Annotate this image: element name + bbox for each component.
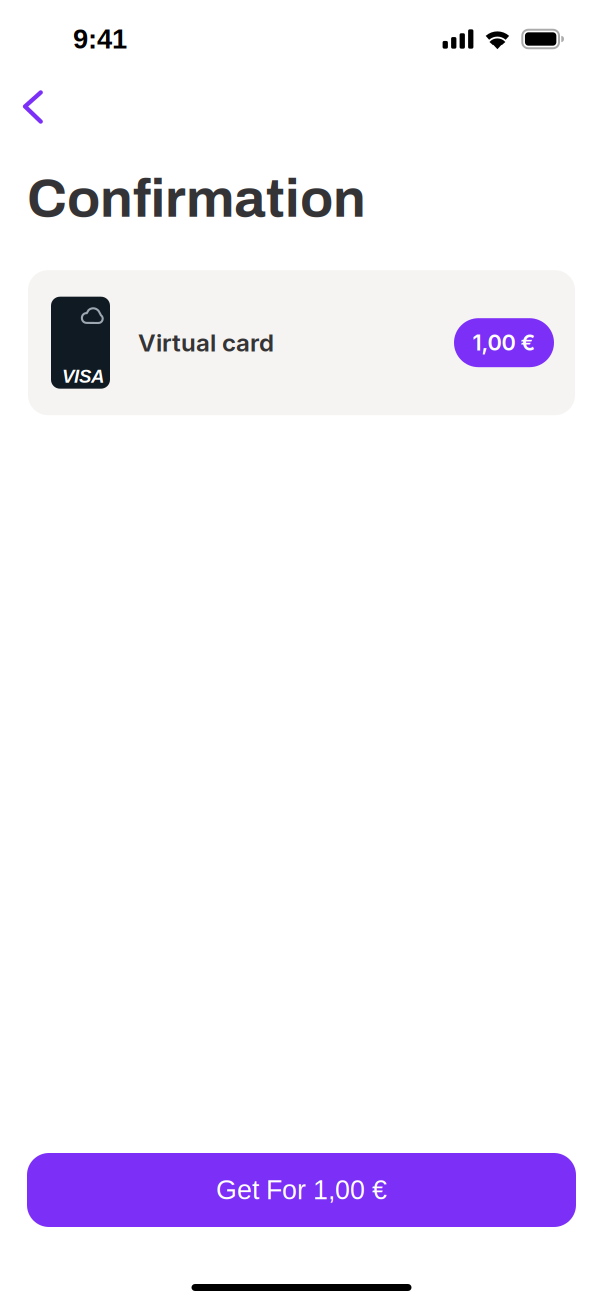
staticText: 9:41 — [73, 24, 127, 54]
staticText: 1,00 € — [472, 329, 535, 356]
button[interactable]: Back — [0, 78, 61, 136]
staticText: VISA — [62, 366, 104, 387]
staticText: Confirmation — [27, 169, 366, 228]
staticText: Get For 1,00 € — [216, 1175, 387, 1205]
button[interactable]: Get For 1,00 € — [27, 1153, 576, 1227]
staticText: Virtual card — [138, 328, 274, 357]
